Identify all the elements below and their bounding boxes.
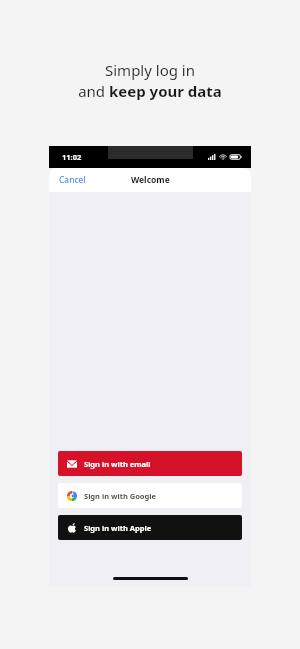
button[interactable]: Sign in with email [58,451,242,476]
staticText: Cancel [59,174,86,186]
staticText: Sign in with Apple [84,523,152,533]
staticText: Sign in with email [84,459,151,469]
button[interactable]: Sign in with Google [58,483,242,508]
staticText: 11:02 [62,152,82,162]
staticText: Simply log in and keep your data [0,60,300,102]
button[interactable]: Cancel [49,170,96,190]
button[interactable]: Sign in with Apple [58,515,242,540]
staticText: Sign in with Google [84,491,157,501]
staticText: Welcome [131,174,170,186]
